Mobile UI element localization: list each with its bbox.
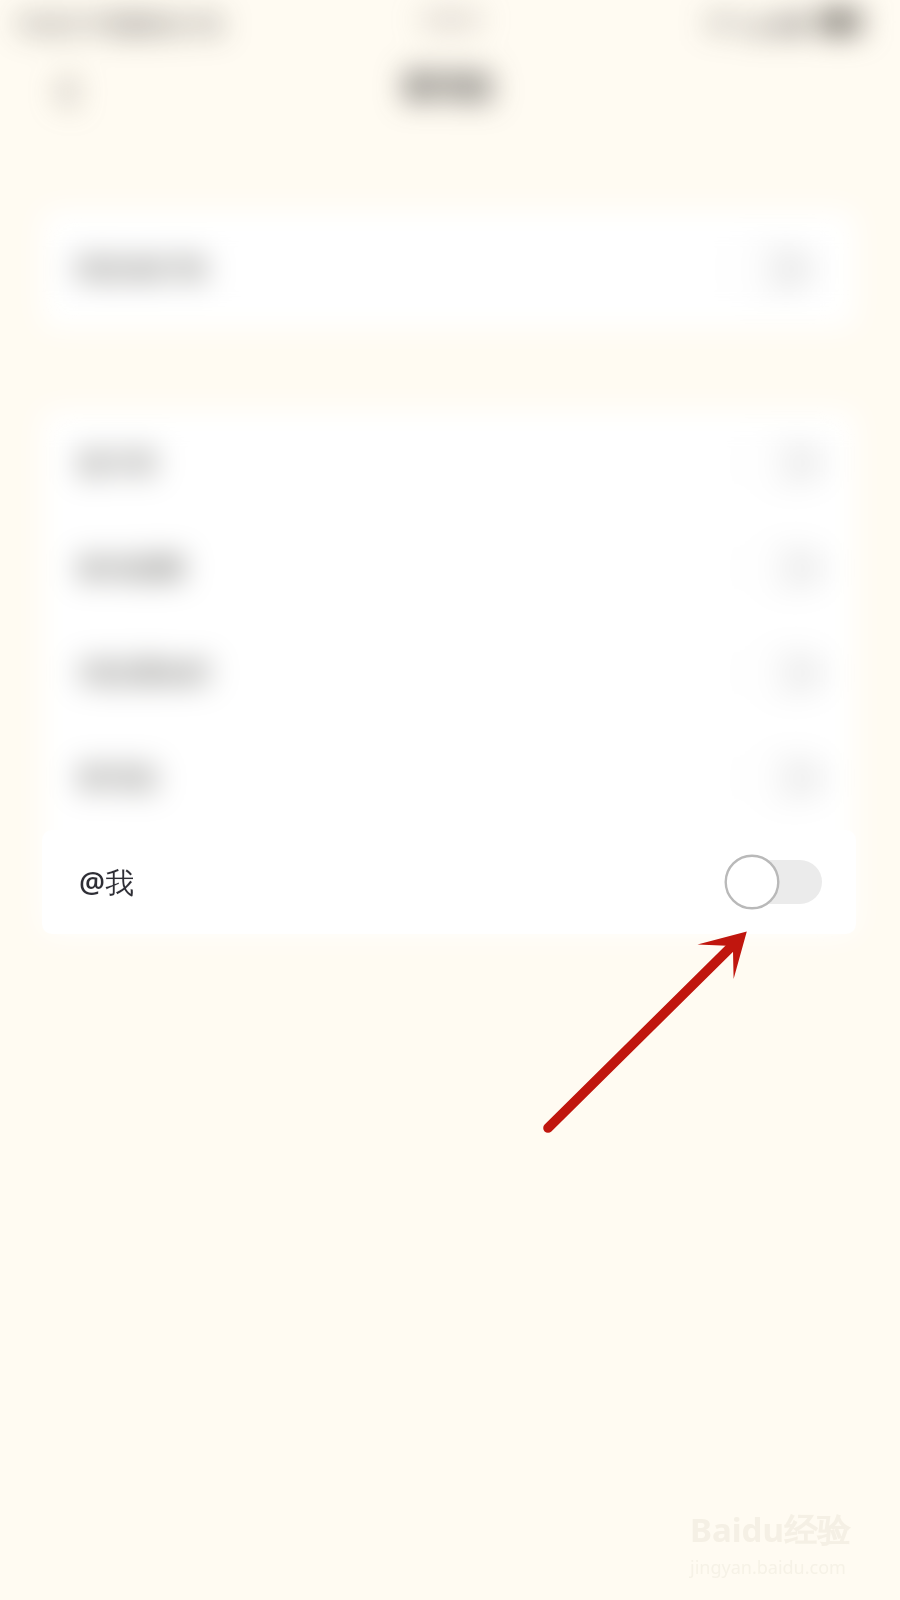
staticText: Baidu经验 (690, 1507, 850, 1552)
button[interactable]: @我 (42, 830, 856, 934)
staticText: @我 (78, 864, 130, 901)
staticText: 提示音 (78, 446, 159, 480)
button[interactable]: 群消息 (42, 725, 856, 830)
button[interactable]: 提示音 开关 (742, 442, 826, 484)
staticText: 振动提醒 (78, 551, 186, 585)
staticText: HD ▲ ▮▮ (706, 7, 803, 37)
staticText: 消息通知栏 (78, 656, 213, 690)
button[interactable]: 振动提醒 (42, 515, 856, 620)
button[interactable]: @我 开关 (742, 861, 826, 903)
staticText: 16:02 中国移动 5G (14, 6, 224, 40)
button[interactable]: 消息免打扰 (42, 210, 856, 328)
staticText: @我 (79, 862, 135, 902)
staticText: 新消息 (403, 68, 493, 106)
button[interactable]: 群消息 开关 (742, 757, 826, 799)
staticText: 消息免打扰 (73, 252, 208, 286)
button[interactable]: @我 (42, 830, 856, 934)
button[interactable]: 消息通知栏 (42, 620, 856, 725)
button[interactable]: 振动提醒 开关 (742, 547, 826, 589)
button[interactable]: 返回 (38, 62, 98, 122)
button[interactable]: 消息通知栏 开关 (742, 652, 826, 694)
button[interactable]: @我 开关 (724, 854, 822, 910)
staticText: jingyan.baidu.com (690, 1555, 846, 1580)
button[interactable]: 提示音 (42, 410, 856, 515)
staticText: 群消息 (78, 761, 159, 795)
